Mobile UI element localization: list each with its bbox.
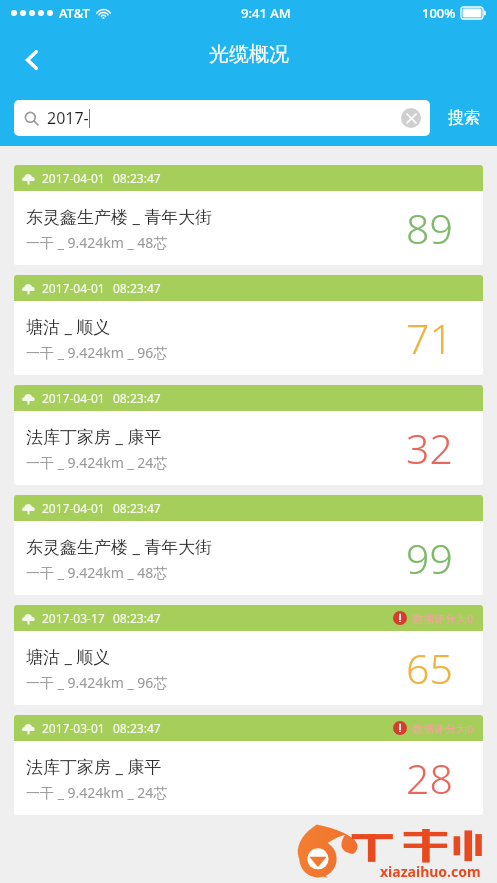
button[interactable]: 2017-04-01	[14, 275, 483, 375]
staticText: 08:23:47	[113, 720, 161, 736]
button[interactable]: 2017-04-01	[14, 495, 483, 595]
staticText: 08:23:47	[113, 280, 161, 296]
staticText: xiazaihuo.com	[380, 862, 481, 881]
staticText: 2017-04-01	[42, 390, 105, 406]
staticText: 一干 _ 9.424km _ 24芯	[26, 783, 168, 802]
staticText: 2017-03-01	[42, 720, 105, 736]
button[interactable]: 搜索	[430, 100, 497, 136]
staticText: 一干 _ 9.424km _ 24芯	[26, 453, 168, 472]
staticText: 光缆概况	[209, 42, 289, 67]
staticText: 东灵鑫生产楼 _ 青年大街	[26, 535, 213, 558]
button[interactable]: Back	[6, 34, 58, 86]
staticText: 2017-04-01	[42, 280, 105, 296]
staticText: 一干 _ 9.424km _ 48芯	[26, 233, 168, 252]
staticText: 32	[406, 420, 453, 476]
staticText: 数据评分为0	[412, 611, 474, 626]
staticText: 99	[406, 530, 453, 586]
staticText: 一干 _ 9.424km _ 96芯	[26, 673, 168, 692]
staticText: 100%	[422, 4, 456, 22]
button[interactable]: 2017-	[14, 100, 430, 136]
staticText: 2017-	[47, 107, 89, 129]
staticText: 9:41 AM	[241, 4, 291, 22]
staticText: 数据评分为0	[412, 721, 474, 736]
button[interactable]: 2017-03-01	[14, 715, 483, 815]
staticText: 2017-03-17	[42, 610, 105, 626]
staticText: 塘沽 _ 顺义	[26, 315, 111, 338]
button[interactable]: 2017-04-01	[14, 165, 483, 265]
staticText: 89	[406, 200, 453, 256]
staticText: 08:23:47	[113, 170, 161, 186]
button[interactable]: Clear	[401, 108, 421, 128]
staticText: 71	[406, 310, 453, 366]
staticText: 塘沽 _ 顺义	[26, 645, 111, 668]
staticText: 一干 _ 9.424km _ 48芯	[26, 563, 168, 582]
staticText: 2017-04-01	[42, 170, 105, 186]
staticText: 东灵鑫生产楼 _ 青年大街	[26, 205, 213, 228]
staticText: 28	[406, 750, 453, 806]
staticText: 法库丁家房 _ 康平	[26, 755, 162, 778]
button[interactable]: 2017-03-17	[14, 605, 483, 705]
staticText: 2017-04-01	[42, 500, 105, 516]
staticText: 08:23:47	[113, 390, 161, 406]
staticText: 08:23:47	[113, 610, 161, 626]
staticText: 法库丁家房 _ 康平	[26, 425, 162, 448]
button[interactable]: 2017-04-01	[14, 385, 483, 485]
staticText: 一干 _ 9.424km _ 96芯	[26, 343, 168, 362]
staticText: 08:23:47	[113, 500, 161, 516]
staticText: AT&T	[59, 4, 90, 22]
staticText: 65	[406, 640, 453, 696]
staticText: 搜索	[448, 108, 480, 128]
